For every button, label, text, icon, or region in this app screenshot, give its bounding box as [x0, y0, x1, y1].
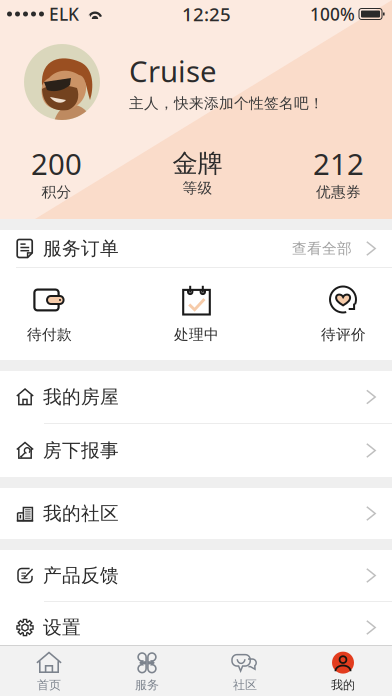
staticText: 服务订单 [43, 237, 119, 260]
staticText: 待付款 [27, 325, 72, 343]
staticText: Cruise [129, 51, 217, 90]
staticText: 200 [31, 144, 82, 183]
staticText: 处理中 [174, 325, 219, 343]
button[interactable]: 处理中 [174, 284, 219, 343]
staticText: 社区 [233, 678, 257, 692]
button[interactable]: 设置 [0, 602, 392, 653]
staticText: 212 [313, 144, 364, 183]
button[interactable]: 待评价 [321, 284, 366, 343]
button[interactable]: 房下报事 [0, 424, 392, 477]
button[interactable]: 待付款 [27, 284, 72, 343]
staticText: 主人，快来添加个性签名吧！ [129, 94, 324, 112]
button[interactable]: 我的社区 [0, 488, 392, 539]
button[interactable]: 我的房屋 [0, 371, 392, 423]
staticText: 产品反馈 [43, 564, 119, 587]
staticText: 12:25 [182, 2, 231, 26]
staticText: 待评价 [321, 325, 366, 343]
button[interactable]: 社区 [196, 644, 294, 696]
staticText: 我的房屋 [43, 385, 119, 408]
staticText: 等级 [182, 179, 212, 197]
staticText: 我的 [331, 678, 355, 692]
staticText: ELK [49, 2, 79, 25]
staticText: 积分 [41, 183, 71, 201]
staticText: 首页 [37, 678, 61, 692]
staticText: 我的社区 [43, 502, 119, 525]
staticText: 房下报事 [43, 439, 119, 462]
staticText: 服务 [135, 678, 159, 692]
button[interactable]: 产品反馈 [0, 550, 392, 601]
staticText: 100% [310, 2, 355, 25]
button[interactable]: 服务订单 [0, 230, 392, 267]
staticText: 金牌 [172, 148, 222, 179]
staticText: 查看全部 [292, 239, 352, 257]
staticText: 优惠券 [316, 183, 361, 201]
button[interactable]: 首页 [0, 644, 98, 696]
button[interactable]: 服务 [98, 644, 196, 696]
button[interactable]: 我的 [294, 644, 392, 696]
staticText: 设置 [43, 616, 81, 639]
